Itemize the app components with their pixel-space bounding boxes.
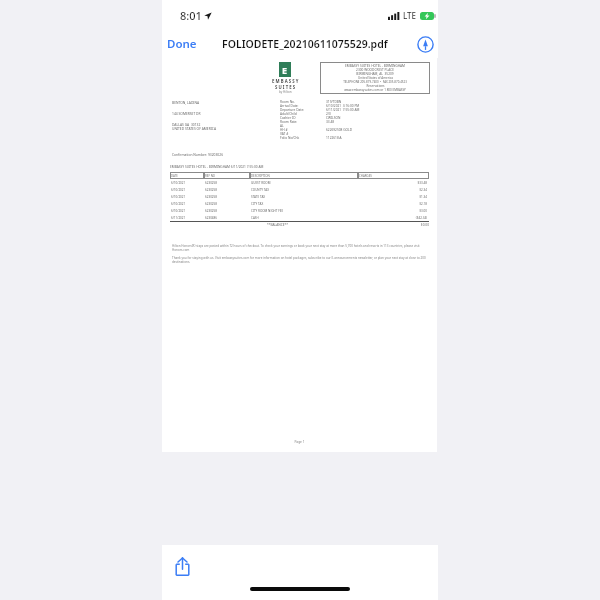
staticText: $2.34 — [358, 188, 427, 192]
staticText: Page 1 — [162, 440, 437, 444]
staticText: EMBASSY SUITES HOTEL - BIRMINGHAM 6/11/2… — [170, 165, 264, 169]
staticText: LTE — [403, 10, 417, 21]
staticText: 6/11/2021 7:55:00 AM — [326, 108, 429, 112]
staticText: $1.34 — [358, 195, 427, 199]
staticText: Done — [167, 36, 197, 52]
staticText: DALLAS GA 30132 — [172, 122, 201, 126]
staticText: E — [282, 64, 288, 76]
staticText: 6/10/2021 — [171, 202, 204, 206]
staticText: 33.48 — [326, 120, 429, 124]
staticText: HH # — [280, 128, 326, 132]
staticText: Reservations — [366, 84, 385, 88]
staticText: 6/10/2021 — [171, 181, 204, 185]
staticText: Thank you for staying with us. Visit emb… — [172, 256, 427, 264]
button[interactable]: Done — [164, 32, 200, 56]
staticText: 319/TDBN — [326, 100, 429, 104]
staticText: 6230258 — [205, 202, 250, 206]
staticText: 1122618:A — [326, 136, 429, 140]
staticText: 6/10/2021 3:16:00 PM — [326, 104, 429, 108]
staticText: by Hilton — [279, 90, 292, 94]
staticText: E M B A S S Y — [272, 78, 299, 84]
staticText: Folio No/Chk — [280, 136, 326, 140]
staticText: DATE — [171, 174, 178, 178]
staticText: STATE TAX — [251, 195, 358, 199]
staticText: United States of America — [358, 76, 393, 80]
staticText: TELEPHONE 205-879-7400 • FAX 205-870-452… — [343, 80, 407, 84]
staticText: $3.00 — [358, 209, 427, 213]
staticText: AL — [280, 124, 326, 128]
button[interactable]: Share — [167, 551, 197, 581]
staticText: **BALANCE** — [170, 223, 385, 227]
staticText: REF NO — [205, 174, 216, 178]
staticText: 622692508 GOLD — [326, 128, 429, 132]
staticText: Hilton Honors(R) stays are posted within… — [172, 244, 427, 252]
staticText: 8:01 — [180, 8, 202, 23]
staticText: S U I T E S — [275, 84, 296, 90]
staticText: VAT # — [280, 132, 326, 136]
staticText: 6/11/2021 — [171, 216, 204, 220]
staticText: Cashier ID — [280, 116, 326, 120]
staticText: Departure Date: — [280, 108, 326, 112]
staticText: Room Rate: — [280, 120, 326, 124]
staticText: DESCRIPTION — [251, 174, 270, 178]
staticText: UNITED STATES OF AMERICA — [172, 126, 217, 130]
staticText: ($42.34) — [358, 216, 427, 220]
staticText: 6/10/2021 — [171, 209, 204, 213]
staticText: 2300 WOODCREST PLACE — [356, 68, 394, 72]
staticText: $33.48 — [358, 181, 427, 185]
staticText: CHARGES — [359, 174, 372, 178]
staticText: 6230258 — [205, 195, 250, 199]
staticText: 6230258 — [205, 188, 250, 192]
staticText: CITY TAX — [251, 202, 358, 206]
staticText: EMBASSY SUITES HOTEL - BIRMINGHAM — [345, 64, 405, 68]
staticText: $0.00 — [385, 223, 429, 227]
staticText: 6230258 — [205, 209, 250, 213]
staticText: 6230258 — [205, 181, 250, 185]
staticText: 6/10/2021 — [171, 195, 204, 199]
staticText: CWILSON — [326, 116, 429, 120]
staticText: CASH — [251, 216, 358, 220]
staticText: FOLIODETE_20210611075529.pdf — [222, 37, 388, 51]
staticText: Arrival Date: — [280, 104, 326, 108]
staticText: BENTON, LADINA — [172, 100, 200, 104]
button[interactable]: Markup — [413, 32, 437, 56]
staticText: CITY ROOM NIGHT FEE — [251, 209, 358, 213]
staticText: 144 SOMERSET DR — [172, 111, 201, 115]
staticText: GUEST ROOM — [251, 181, 358, 185]
staticText: Room No. — [280, 100, 326, 104]
staticText: Confirmation Number: 93203026 — [172, 152, 224, 156]
staticText: 2/0 — [326, 112, 429, 116]
staticText: COUNTY TAX — [251, 188, 358, 192]
staticText: BIRMINGHAM, AL 35209 — [356, 72, 394, 76]
staticText: $2.18 — [358, 202, 427, 206]
staticText: www.embassysuites.com or 1 800 EMBASSY — [344, 88, 406, 92]
staticText: 6/10/2021 — [171, 188, 204, 192]
staticText: 6230486 — [205, 216, 250, 220]
staticText: Adult/Child — [280, 112, 326, 116]
